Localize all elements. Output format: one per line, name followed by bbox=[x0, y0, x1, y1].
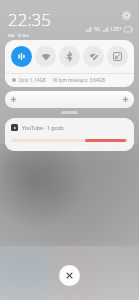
button[interactable]: Mobile data bbox=[11, 46, 32, 67]
staticText: Wt, 9 lip bbox=[8, 32, 29, 37]
button[interactable]: Bluetooth bbox=[59, 46, 80, 67]
button[interactable]: Brightness bbox=[5, 91, 134, 108]
staticText: LTE+ bbox=[111, 26, 122, 33]
button[interactable]: Expand bbox=[61, 111, 78, 114]
button[interactable]: Hotspot bbox=[83, 46, 104, 67]
button[interactable]: Close bbox=[59, 265, 80, 286]
staticText: Dziś: 1,14GB bbox=[19, 77, 46, 83]
staticText: YouTube · 1 godz. bbox=[22, 124, 65, 131]
staticText: 5G bbox=[94, 26, 101, 33]
button[interactable]: YouTube · 1 godz. bbox=[5, 118, 134, 151]
staticText: W tym miesiącu: 3,64GB bbox=[53, 77, 105, 83]
button[interactable]: Wi-Fi bbox=[35, 46, 56, 67]
button[interactable]: Data usage bbox=[107, 46, 128, 67]
button[interactable]: Settings bbox=[120, 9, 132, 21]
staticText: 22:35 bbox=[8, 8, 51, 31]
